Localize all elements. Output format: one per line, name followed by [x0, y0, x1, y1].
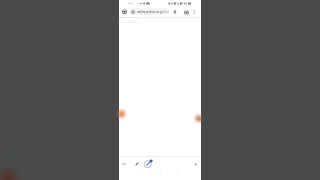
- staticText: about:blank: [120, 20, 138, 24]
- button[interactable]: Edit: [143, 158, 153, 168]
- button[interactable]: Google Lens: [182, 8, 190, 16]
- staticText: /wiki: [163, 9, 169, 14]
- button[interactable]: Voice search: [171, 8, 179, 16]
- button[interactable]: More options: [190, 8, 198, 16]
- button[interactable]: Expand toolbar: [120, 160, 128, 168]
- button[interactable]: Home: [120, 7, 128, 15]
- button[interactable]: wikipedia.org: [130, 8, 169, 15]
- button[interactable]: Add: [191, 160, 199, 168]
- staticText: wikipedia.org: [137, 9, 163, 14]
- button[interactable]: Pen: [133, 160, 141, 168]
